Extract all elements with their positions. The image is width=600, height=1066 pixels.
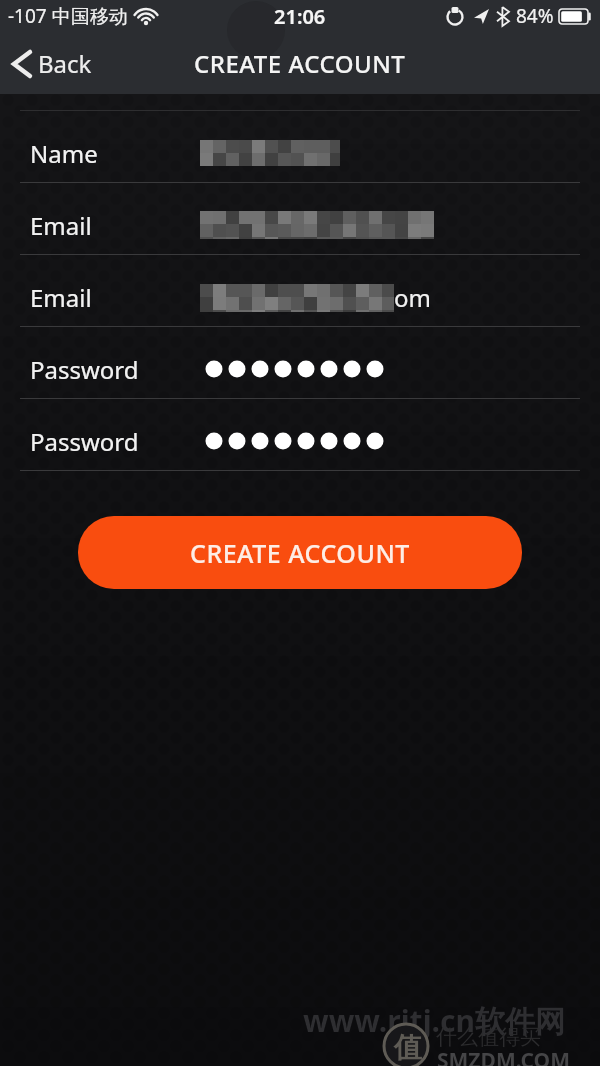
- staticText: Email: [30, 281, 92, 314]
- staticText: om: [394, 281, 431, 314]
- button[interactable]: CREATE ACCOUNT: [78, 516, 522, 589]
- staticText: Back: [38, 47, 92, 80]
- staticText: Password: [30, 353, 139, 386]
- staticText: www.rjtj.cn软件网: [303, 1000, 565, 1041]
- staticText: 84%: [516, 3, 554, 29]
- staticText: 什么值得买: [436, 1024, 541, 1050]
- staticText: CREATE ACCOUNT: [190, 536, 410, 570]
- button[interactable]: Email: [0, 255, 600, 327]
- staticText: SMZDM.COM: [437, 1046, 571, 1066]
- staticText: CREATE ACCOUNT: [194, 47, 406, 80]
- button[interactable]: Name: [0, 111, 600, 183]
- staticText: Email: [30, 209, 92, 242]
- staticText: 21:06: [274, 3, 326, 30]
- staticText: Password: [30, 425, 139, 458]
- staticText: Name: [30, 137, 98, 170]
- staticText: 值: [394, 1030, 422, 1065]
- button[interactable]: Back: [12, 47, 92, 80]
- button[interactable]: Email: [0, 183, 600, 255]
- button[interactable]: Password: [0, 327, 600, 399]
- button[interactable]: Password: [0, 399, 600, 471]
- staticText: -107 中国移动: [8, 3, 128, 29]
